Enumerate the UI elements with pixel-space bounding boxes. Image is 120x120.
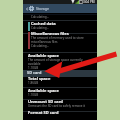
staticText: available xyxy=(28,62,41,66)
button[interactable]: Unmount SD card xyxy=(23,99,97,109)
button[interactable]: Cached data xyxy=(23,21,97,32)
staticText: Available space xyxy=(28,53,59,58)
staticText: Format SD card xyxy=(28,110,59,115)
staticText: 1.86GB xyxy=(28,81,39,85)
staticText: 1.10GB xyxy=(28,93,39,97)
staticText: Miscellaneous files xyxy=(31,31,69,36)
button[interactable]: Available space xyxy=(23,53,97,70)
staticText: Available space xyxy=(28,88,59,93)
button[interactable]: Miscellaneous files xyxy=(23,31,97,51)
staticText: Calculating... xyxy=(31,26,50,30)
staticText: Cached data xyxy=(31,21,56,26)
staticText: Storage xyxy=(36,6,50,11)
staticText: The amount of memory used to store xyxy=(31,36,84,40)
staticText: miscellaneous files xyxy=(31,40,58,44)
staticText: Calculating... xyxy=(31,15,50,19)
staticText: Unmount the SD card to safely remove it xyxy=(28,104,86,108)
button[interactable]: Available space xyxy=(23,88,97,98)
staticText: Calculating... xyxy=(31,44,50,48)
staticText: The amount of storage space currently xyxy=(28,58,83,62)
other: Settings xyxy=(29,6,34,11)
staticText: 3:04 PM xyxy=(83,0,95,4)
other: Navigate up xyxy=(26,7,28,11)
staticText: SD card xyxy=(27,70,42,75)
button[interactable]: Format SD card xyxy=(23,110,97,119)
staticText: 1.10GB xyxy=(28,66,39,70)
staticText: Unmount SD card xyxy=(28,99,63,104)
button[interactable]: Total space xyxy=(23,76,97,87)
staticText: Total space xyxy=(28,76,51,81)
